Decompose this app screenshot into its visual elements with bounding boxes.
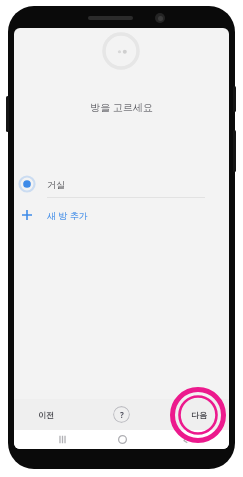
button[interactable]: 다음	[191, 410, 207, 420]
button[interactable]: Help	[113, 406, 130, 423]
button[interactable]: Home	[112, 430, 132, 449]
staticText: 거실	[47, 179, 65, 190]
button[interactable]: 거실	[14, 171, 229, 197]
staticText: 방을 고르세요	[14, 100, 229, 114]
staticText: 이전	[38, 410, 54, 420]
button[interactable]: 이전	[38, 410, 54, 420]
staticText: 새 방 추가	[47, 209, 88, 221]
staticText: 다음	[191, 410, 207, 420]
button[interactable]: 새 방 추가	[14, 203, 229, 227]
button[interactable]: Back	[175, 430, 195, 449]
staticText: ?	[120, 409, 124, 420]
button[interactable]: Recents	[52, 430, 72, 449]
